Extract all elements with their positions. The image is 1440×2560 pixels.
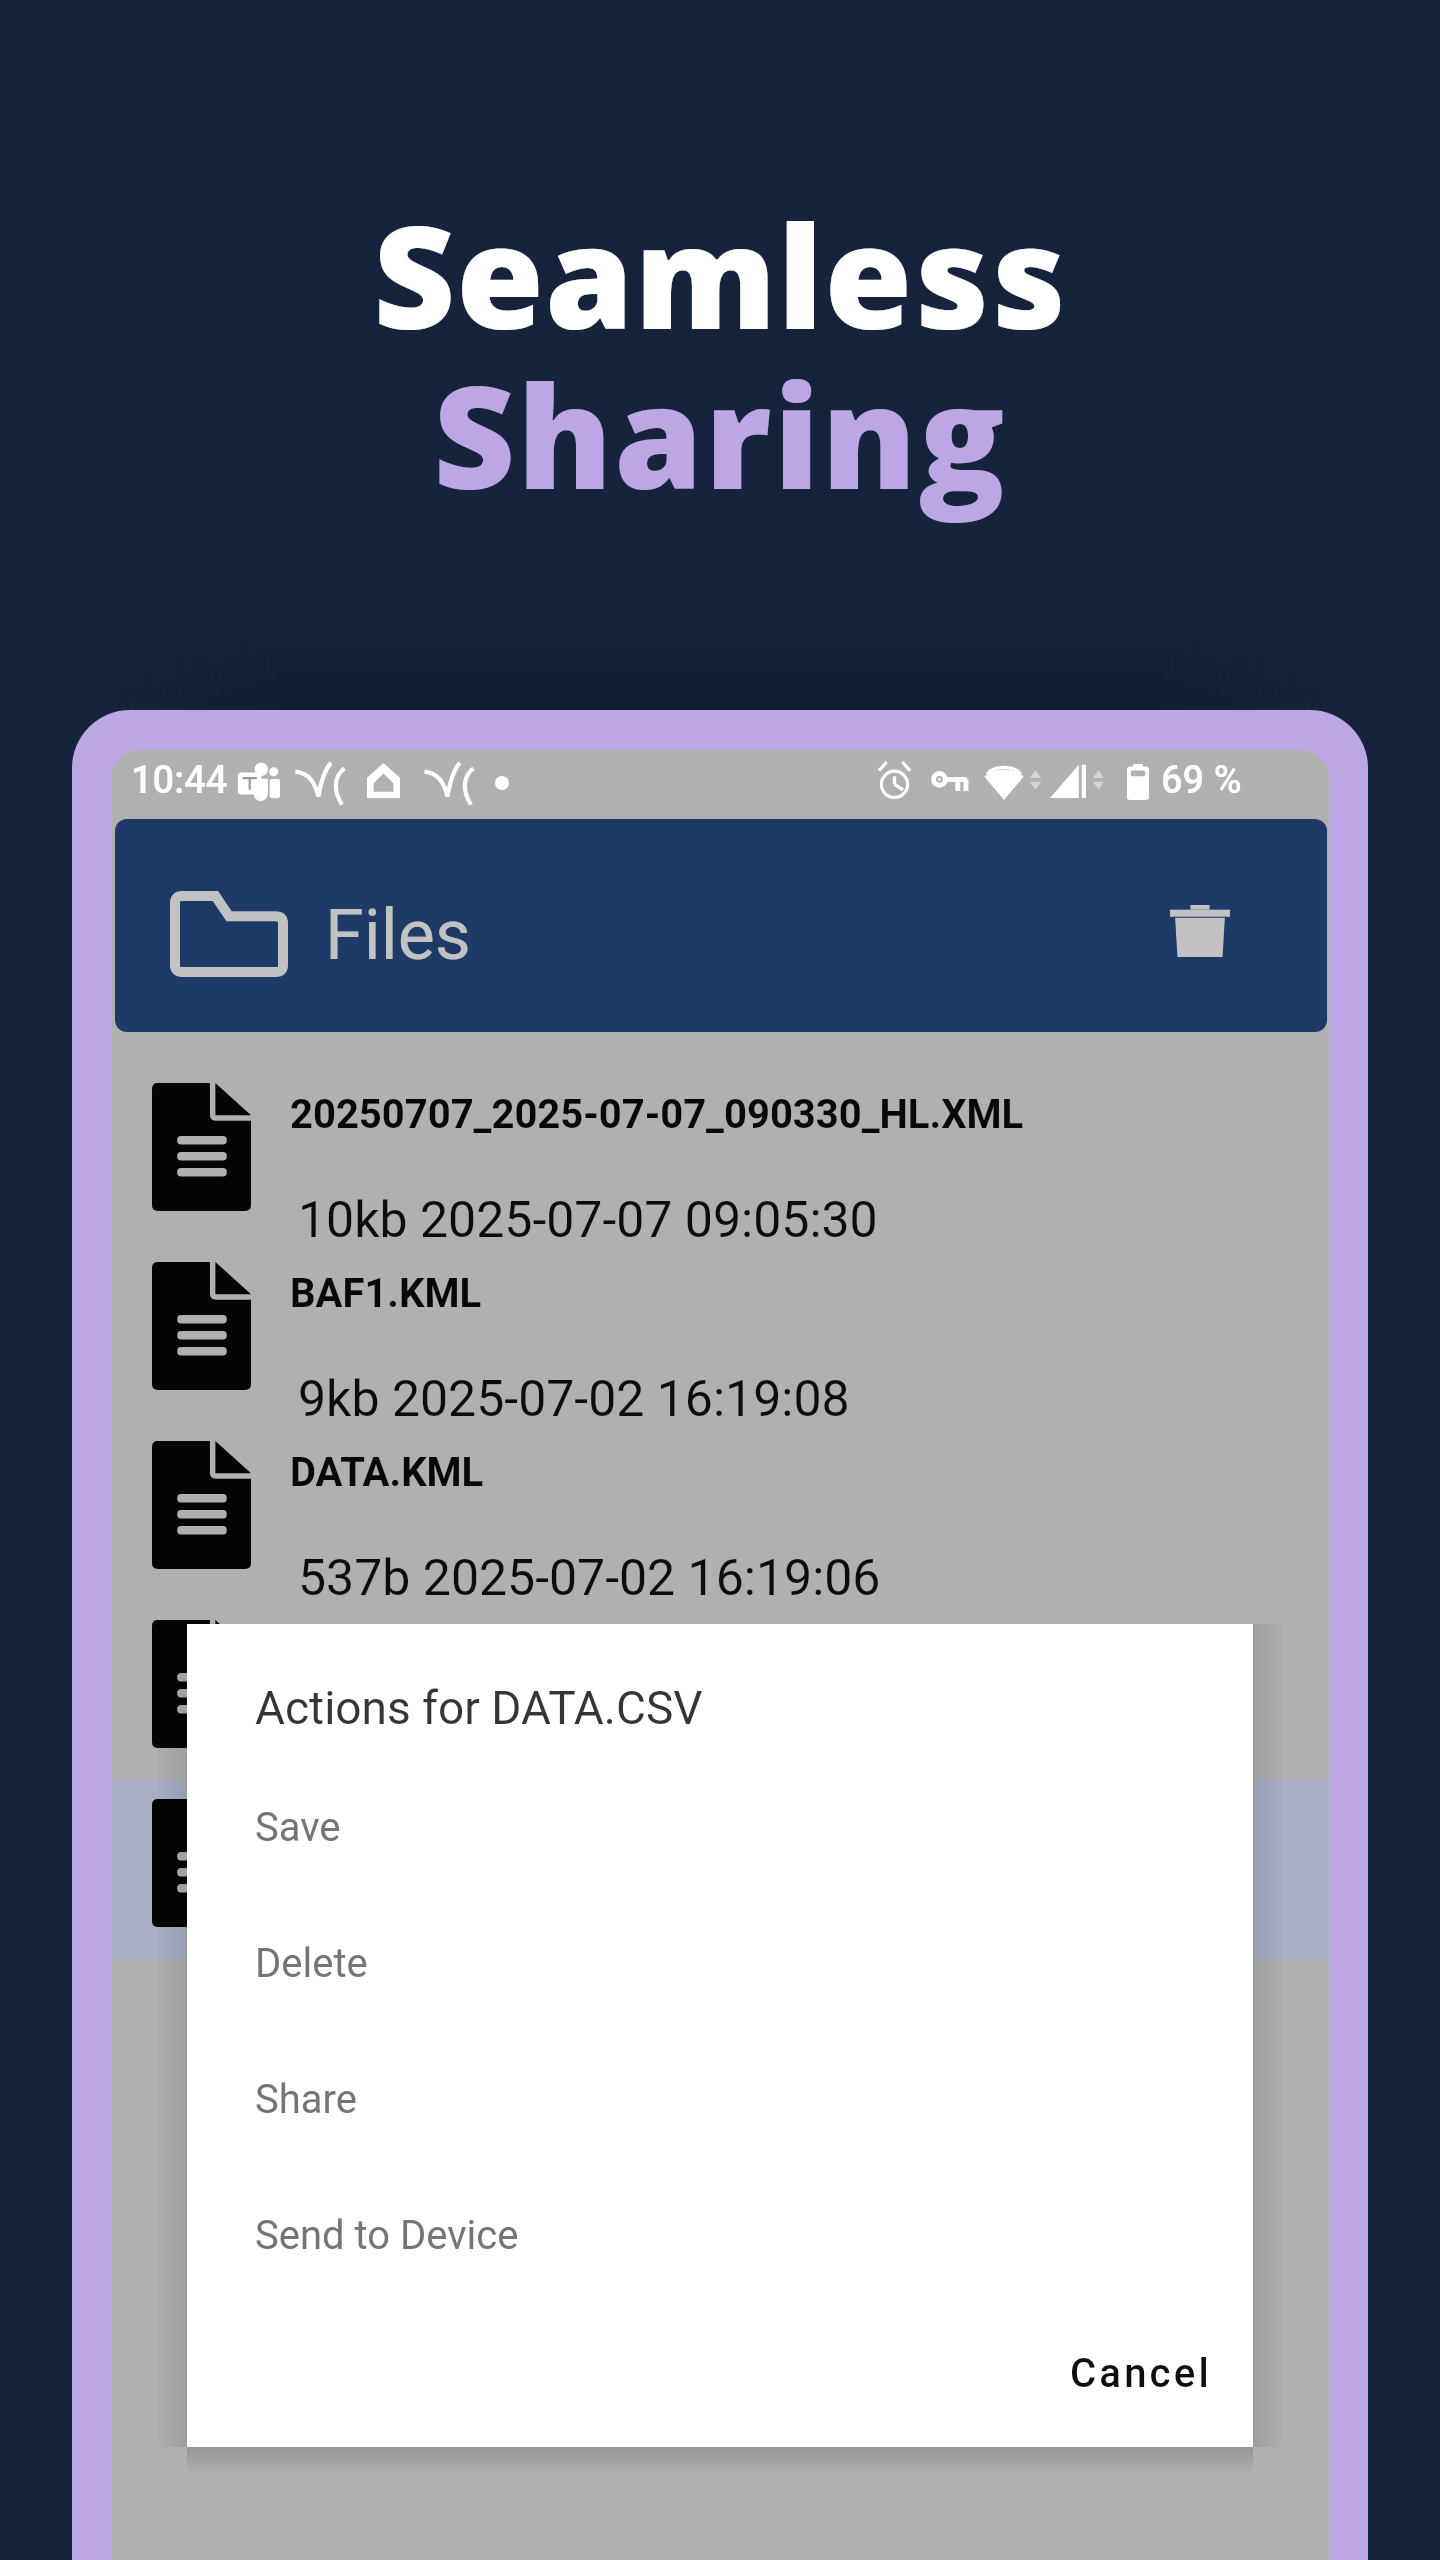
staticText: Send to Device bbox=[255, 2212, 519, 2259]
button[interactable]: 20250707_2025-07-07_090330_HL.XML bbox=[111, 1083, 1329, 1262]
staticText: Actions for DATA.CSV bbox=[255, 1681, 703, 1735]
staticText: 10:44 bbox=[131, 758, 228, 803]
button[interactable]: Send to Device bbox=[187, 2167, 1253, 2303]
button[interactable]: BAF1.KML bbox=[111, 1262, 1329, 1441]
staticText: 537b 2025-07-02 16:19:06 bbox=[298, 1549, 881, 1608]
staticText: Save bbox=[255, 1804, 341, 1851]
staticText: BAF1.KML bbox=[290, 1270, 482, 1317]
button[interactable]: Files bbox=[115, 819, 1327, 1032]
button[interactable] bbox=[111, 1799, 1329, 1978]
staticText: Seamless bbox=[373, 177, 1067, 370]
staticText: 10kb 2025-07-07 09:05:30 bbox=[298, 1191, 878, 1250]
button[interactable]: Delete bbox=[1155, 886, 1245, 976]
staticText: 69 % bbox=[1161, 758, 1242, 803]
button[interactable]: Save bbox=[187, 1759, 1253, 1895]
button[interactable]: Share bbox=[187, 2031, 1253, 2167]
staticText: Share bbox=[255, 2076, 357, 2123]
button[interactable]: DATA.KML bbox=[111, 1441, 1329, 1620]
staticText: Files bbox=[325, 894, 471, 976]
staticText: DATA.KML bbox=[290, 1449, 484, 1496]
staticText: Sharing bbox=[433, 337, 1007, 530]
staticText: 20250707_2025-07-07_090330_HL.XML bbox=[290, 1091, 1024, 1138]
staticText: Cancel bbox=[1070, 2350, 1212, 2397]
button[interactable]: Delete bbox=[187, 1895, 1253, 2031]
button[interactable]: Cancel bbox=[892, 2333, 1212, 2413]
button[interactable] bbox=[111, 1620, 1329, 1799]
staticText: 9kb 2025-07-02 16:19:08 bbox=[298, 1370, 850, 1429]
staticText: Delete bbox=[255, 1940, 368, 1987]
